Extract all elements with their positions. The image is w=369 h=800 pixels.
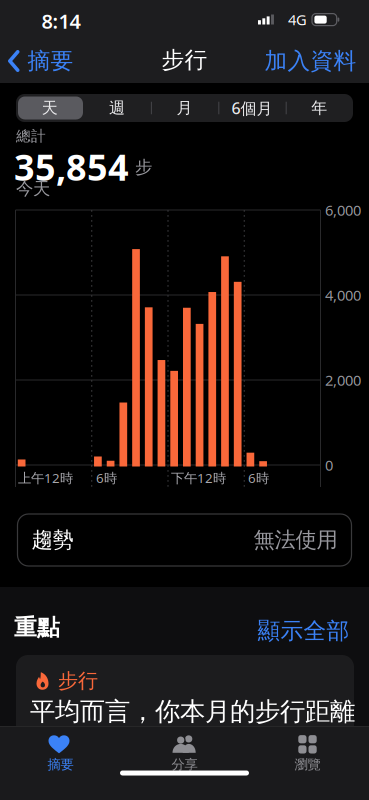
staticText: 4G bbox=[288, 10, 307, 29]
staticText: 上午12時 bbox=[18, 469, 73, 487]
button[interactable]: 顯示全部 bbox=[257, 617, 349, 645]
staticText: 無法使用 bbox=[253, 527, 337, 553]
staticText: 今天 bbox=[16, 178, 50, 199]
button[interactable]: 摘要 bbox=[20, 733, 100, 775]
staticText: 摘要 bbox=[47, 756, 73, 773]
button[interactable]: 分享 bbox=[144, 733, 224, 775]
button[interactable]: 摘要 bbox=[8, 48, 73, 74]
staticText: 年 bbox=[311, 98, 327, 118]
staticText: 4,000 bbox=[325, 285, 361, 305]
button[interactable]: 步行 bbox=[16, 655, 354, 755]
staticText: 8:14 bbox=[41, 8, 80, 34]
staticText: 下午12時 bbox=[171, 469, 226, 487]
button[interactable]: 週 bbox=[83, 94, 151, 122]
staticText: 摘要 bbox=[27, 47, 73, 75]
staticText: 步 bbox=[135, 156, 152, 178]
button[interactable]: 月 bbox=[151, 94, 218, 122]
staticText: 6時 bbox=[248, 469, 269, 487]
staticText: 重點 bbox=[14, 613, 60, 641]
staticText: 加入資料 bbox=[264, 47, 356, 75]
staticText: 瀏覽 bbox=[294, 756, 320, 773]
staticText: 步行 bbox=[161, 46, 207, 74]
staticText: 平均而言，你本月的步行距離 bbox=[30, 696, 355, 727]
staticText: 週 bbox=[109, 98, 125, 118]
staticText: 0 bbox=[325, 455, 333, 475]
staticText: 6,000 bbox=[325, 200, 361, 220]
staticText: 分享 bbox=[171, 756, 197, 773]
staticText: 天 bbox=[42, 98, 58, 118]
staticText: 顯示全部 bbox=[257, 617, 349, 645]
staticText: 35,854 bbox=[14, 143, 129, 191]
staticText: 步行 bbox=[58, 668, 98, 693]
button[interactable]: 年 bbox=[286, 94, 353, 122]
staticText: 2,000 bbox=[325, 370, 361, 390]
staticText: 6時 bbox=[96, 469, 117, 487]
staticText: 趨勢 bbox=[31, 527, 73, 553]
button[interactable]: 6個月 bbox=[218, 94, 286, 122]
button[interactable]: 趨勢 bbox=[17, 514, 351, 566]
staticText: 6個月 bbox=[231, 97, 272, 119]
button[interactable]: 天 bbox=[16, 94, 83, 122]
button[interactable]: 瀏覽 bbox=[267, 733, 347, 775]
button[interactable]: 加入資料 bbox=[264, 47, 356, 75]
staticText: 總計 bbox=[16, 127, 46, 145]
staticText: 月 bbox=[176, 98, 192, 118]
